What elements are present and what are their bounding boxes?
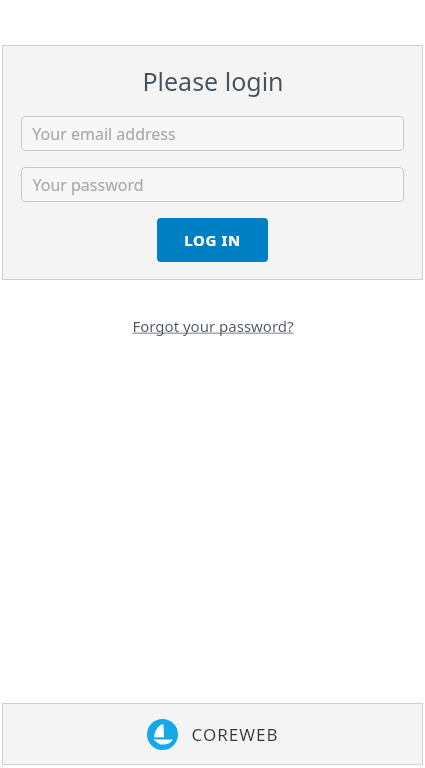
staticText: Please login: [142, 64, 284, 98]
staticText: LOG IN: [184, 230, 241, 250]
button[interactable]: Your email address: [21, 116, 404, 151]
staticText: Your email address: [32, 123, 176, 145]
button[interactable]: LOG IN: [157, 218, 268, 262]
other: Coreweb logo: [147, 719, 178, 750]
button[interactable]: Your password: [21, 167, 404, 202]
staticText: COREWEB: [191, 723, 279, 746]
staticText: Your password: [32, 174, 144, 196]
button[interactable]: Forgot your password?: [132, 316, 294, 336]
staticText: Forgot your password?: [132, 316, 294, 336]
